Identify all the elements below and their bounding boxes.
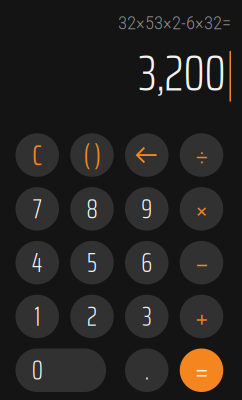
staticText: 2	[87, 295, 97, 337]
button[interactable]: 1	[15, 295, 59, 338]
staticText: 5	[87, 242, 97, 284]
button[interactable]: ( )	[70, 133, 114, 177]
staticText: .	[145, 349, 149, 391]
staticText: −	[195, 240, 208, 286]
staticText: ÷	[195, 132, 208, 178]
staticText: C	[32, 132, 42, 178]
button[interactable]: 9	[125, 187, 168, 231]
button[interactable]: .	[125, 348, 168, 392]
button[interactable]: 5	[70, 241, 114, 284]
button[interactable]: 4	[15, 241, 59, 284]
button[interactable]	[125, 133, 168, 177]
staticText: ×	[195, 186, 207, 232]
staticText: 8	[86, 188, 97, 230]
button[interactable]: +	[180, 295, 223, 338]
staticText: 0	[32, 349, 43, 391]
button[interactable]: 0	[15, 348, 106, 392]
button[interactable]: ×	[180, 187, 223, 231]
button[interactable]: 7	[15, 187, 59, 231]
button[interactable]: 2	[70, 295, 114, 338]
staticText: 9	[141, 188, 152, 230]
staticText: 32×53×2-6×32=	[118, 12, 231, 34]
button[interactable]: 6	[125, 241, 168, 284]
staticText: 3	[142, 295, 151, 337]
staticText: =	[195, 347, 208, 393]
staticText: 7	[33, 188, 42, 230]
staticText: 1	[34, 295, 40, 337]
button[interactable]: −	[180, 241, 223, 284]
button[interactable]: 3	[125, 295, 168, 338]
staticText: 3,200	[138, 33, 225, 113]
button[interactable]: ÷	[180, 133, 223, 177]
staticText: +	[195, 293, 208, 340]
button[interactable]: 8	[70, 187, 114, 231]
button[interactable]: =	[180, 348, 223, 392]
staticText: ( )	[83, 132, 100, 178]
staticText: 6	[141, 242, 152, 284]
button[interactable]: C	[15, 133, 59, 177]
staticText: 4	[32, 242, 43, 284]
